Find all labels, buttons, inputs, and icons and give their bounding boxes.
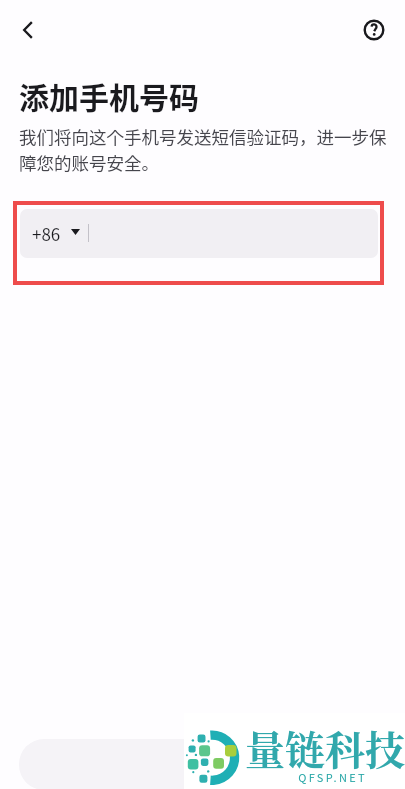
staticText: 量链科技 [245, 719, 405, 776]
staticText: QFSP.NET [298, 769, 367, 785]
staticText: 添加手机号码 [19, 74, 199, 117]
staticText: 我们将向这个手机号发送短信验证码，进一步保障您的账号安全。 [19, 124, 403, 175]
button[interactable] [19, 739, 385, 789]
button[interactable]: +86 [20, 209, 378, 258]
button[interactable]: Back [10, 12, 46, 48]
staticText: +86 [32, 221, 61, 246]
button[interactable]: Help [356, 12, 392, 48]
